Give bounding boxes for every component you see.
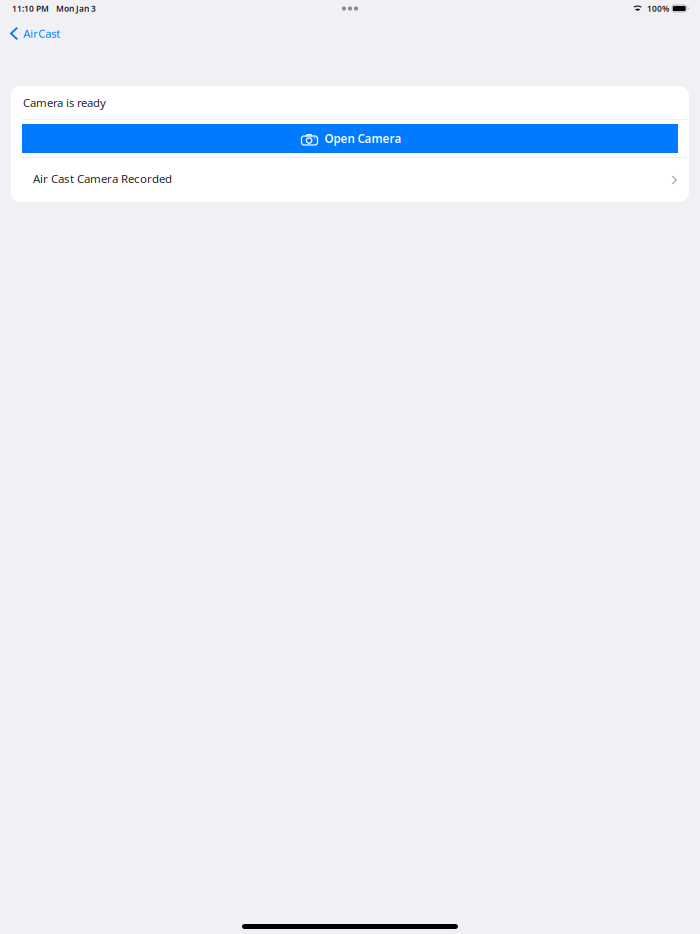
button[interactable]: Open Camera (22, 124, 678, 153)
button[interactable]: Air Cast Camera Recorded (11, 158, 689, 202)
staticText: 11:10 PM (12, 3, 49, 14)
staticText: Open Camera (324, 131, 401, 146)
button[interactable]: AirCast (10, 22, 60, 45)
staticText: Air Cast Camera Recorded (33, 171, 172, 186)
staticText: Camera is ready (23, 95, 106, 110)
staticText: Mon Jan 3 (56, 3, 96, 14)
staticText: AirCast (23, 26, 60, 41)
staticText: 100% (647, 3, 669, 14)
